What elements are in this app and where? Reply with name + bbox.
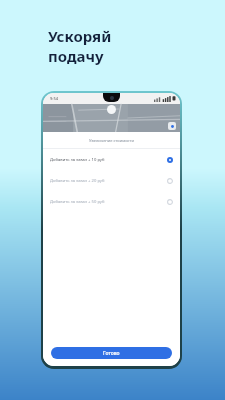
staticText: Добавить за заказ + 50 руб bbox=[50, 199, 167, 205]
staticText: подачу bbox=[48, 46, 104, 66]
button[interactable]: Добавить за заказ + 10 руб bbox=[43, 149, 180, 170]
staticText: Добавить за заказ + 10 руб bbox=[50, 157, 167, 163]
staticText: Добавить за заказ + 20 руб bbox=[50, 178, 167, 184]
button[interactable]: Добавить за заказ + 20 руб bbox=[43, 170, 180, 191]
staticText: 9:54 bbox=[50, 96, 58, 101]
staticText: Увеличение стоимости bbox=[89, 138, 134, 143]
button[interactable]: Добавить за заказ + 50 руб bbox=[43, 191, 180, 212]
button[interactable]: Map layers bbox=[168, 122, 176, 130]
button[interactable]: Готово bbox=[51, 347, 172, 359]
staticText: Ускоряй bbox=[48, 26, 112, 46]
staticText: Готово bbox=[103, 350, 120, 357]
